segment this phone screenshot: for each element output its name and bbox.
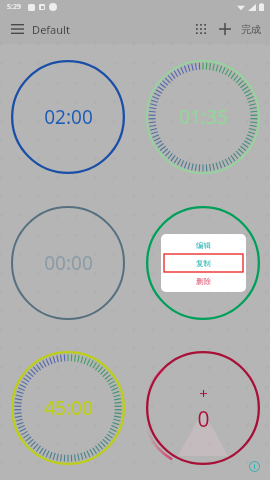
button[interactable]: 完成 [237,23,265,36]
button[interactable]: + [135,335,270,480]
staticText: + [199,383,208,403]
button[interactable]: 复制 [161,254,246,272]
button[interactable]: Menu [6,18,28,40]
button[interactable]: Add timer [213,17,237,41]
staticText: 45:00 [44,395,93,421]
button[interactable]: Grid view [189,17,213,41]
button[interactable]: 00:00 [0,190,135,335]
staticText: 5:29 [7,2,21,12]
staticText: 复制 [196,259,211,268]
staticText: 完成 [241,23,261,36]
staticText: 0 [197,405,210,434]
staticText: 00:00 [44,250,93,276]
staticText: 编辑 [196,241,211,250]
button[interactable]: 删除 [161,272,246,290]
button[interactable]: 01:35 [135,44,270,190]
staticText: 删除 [196,277,211,286]
button[interactable]: 02:00 [0,44,135,190]
staticText: 02:00 [44,104,93,130]
button[interactable]: 45:00 [0,335,135,480]
button[interactable]: 编辑 [161,236,246,254]
staticText: Default [32,22,70,37]
button[interactable]: 编辑 [135,190,270,335]
button[interactable]: Info [246,458,262,474]
staticText: 01:35 [179,104,228,130]
